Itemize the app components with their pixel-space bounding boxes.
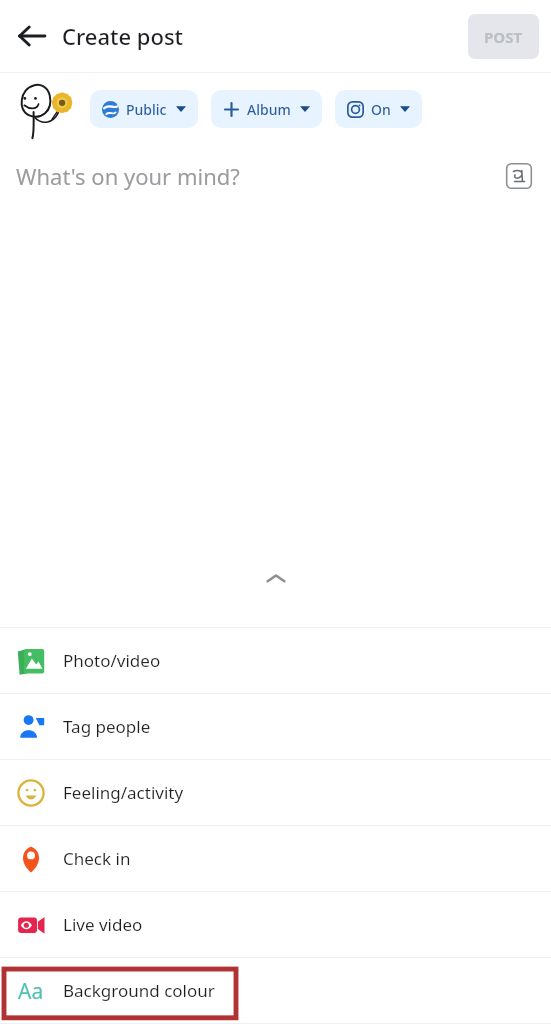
staticText: Photo/video (63, 649, 161, 672)
button[interactable]: Live video (0, 892, 551, 957)
staticText: What's on your mind? (16, 161, 240, 191)
staticText: Tag people (63, 715, 151, 738)
staticText: POST (484, 27, 523, 47)
button[interactable]: Check in (0, 826, 551, 891)
button[interactable]: Collapse (254, 557, 298, 601)
button[interactable]: Public (90, 90, 198, 128)
staticText: Feeling/activity (63, 781, 184, 804)
button[interactable]: Keyboard language (499, 156, 539, 196)
button[interactable]: Aa (0, 958, 551, 1023)
staticText: Live video (63, 913, 143, 936)
staticText: Check in (63, 847, 131, 870)
button[interactable]: Tag people (0, 694, 551, 759)
button[interactable]: Back (6, 10, 58, 62)
button[interactable]: Photo/video (0, 628, 551, 693)
staticText: Public (126, 100, 167, 119)
staticText: Create post (62, 21, 184, 51)
button[interactable]: Album (211, 90, 322, 128)
staticText: Background colour (63, 979, 215, 1002)
staticText: Album (247, 100, 291, 119)
button[interactable]: POST (468, 14, 539, 59)
staticText: On (371, 100, 391, 119)
button[interactable]: Feeling/activity (0, 760, 551, 825)
staticText: Aa (18, 977, 44, 1006)
button[interactable]: On (335, 90, 422, 128)
